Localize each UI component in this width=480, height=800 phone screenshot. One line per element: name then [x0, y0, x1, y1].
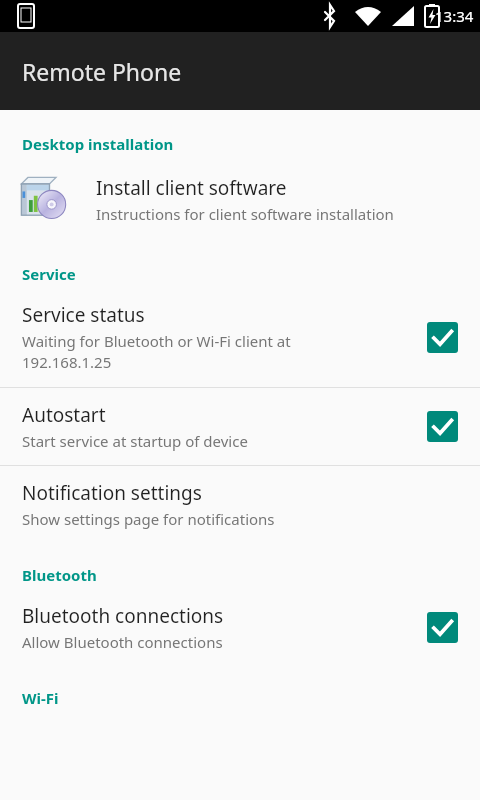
staticText: Autostart [22, 402, 106, 428]
staticText: Bluetooth [22, 565, 97, 585]
button[interactable]: Bluetooth connections [0, 589, 480, 666]
staticText: Remote Phone [22, 56, 182, 87]
staticText: Waiting for Bluetooth or Wi-Fi client at… [22, 331, 291, 373]
button[interactable]: Install client software [0, 158, 480, 240]
staticText: Wi-Fi [22, 688, 59, 708]
staticText: Bluetooth connections [22, 603, 224, 629]
staticText: Show settings page for notifications [22, 509, 275, 529]
staticText: Install client software [96, 175, 287, 201]
button[interactable]: Service status [0, 288, 480, 387]
staticText: Instructions for client software install… [96, 204, 394, 224]
staticText: Notification settings [22, 480, 202, 506]
staticText: Desktop installation [22, 134, 174, 154]
staticText: Allow Bluetooth connections [22, 632, 223, 652]
staticText: Service status [22, 302, 145, 328]
staticText: 13:34 [435, 6, 474, 26]
button[interactable]: Toggle setting [427, 322, 458, 353]
button[interactable]: Toggle setting [427, 411, 458, 442]
button[interactable]: Toggle setting [427, 612, 458, 643]
button[interactable]: Autostart [0, 388, 480, 465]
staticText: Start service at startup of device [22, 431, 248, 451]
staticText: Service [22, 264, 76, 284]
button[interactable]: Notification settings [0, 466, 480, 543]
